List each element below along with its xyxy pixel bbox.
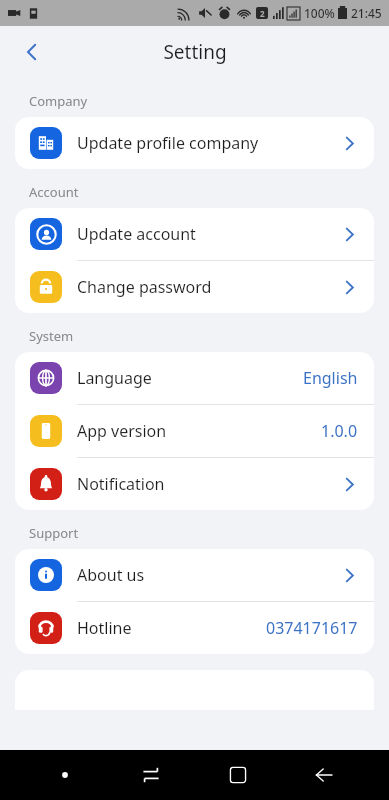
staticText: Change password [77,276,341,298]
staticText: Company [29,92,88,110]
staticText: System [29,327,74,345]
staticText: Support [29,524,79,542]
button[interactable]: Language [15,352,374,404]
button[interactable]: Hotline [15,602,374,654]
button[interactable]: Notification [15,458,374,510]
staticText: 2 [260,8,265,19]
button[interactable]: Assistant [43,753,87,797]
staticText: Language [77,367,303,389]
staticText: About us [77,564,341,586]
button[interactable]: About us [15,549,374,601]
staticText: Setting [163,39,227,65]
button[interactable]: Update account [15,208,374,260]
button[interactable]: Home [216,753,260,797]
staticText: 0374171617 [266,617,358,639]
button[interactable]: Change password [15,261,374,313]
button[interactable]: Recent apps [129,753,173,797]
staticText: Hotline [77,617,266,639]
button[interactable]: Back [302,753,346,797]
staticText: Update profile company [77,132,341,154]
staticText: Account [29,183,79,201]
staticText: 21:45 [351,5,382,21]
button[interactable]: Back [10,30,54,74]
staticText: App version [77,420,321,442]
button[interactable]: App version [15,405,374,457]
staticText: 1.0.0 [321,420,358,442]
staticText: English [303,367,358,389]
staticText: 100% [304,5,335,21]
staticText: Notification [77,473,341,495]
button[interactable]: Update profile company [15,117,374,169]
staticText: Update account [77,223,341,245]
